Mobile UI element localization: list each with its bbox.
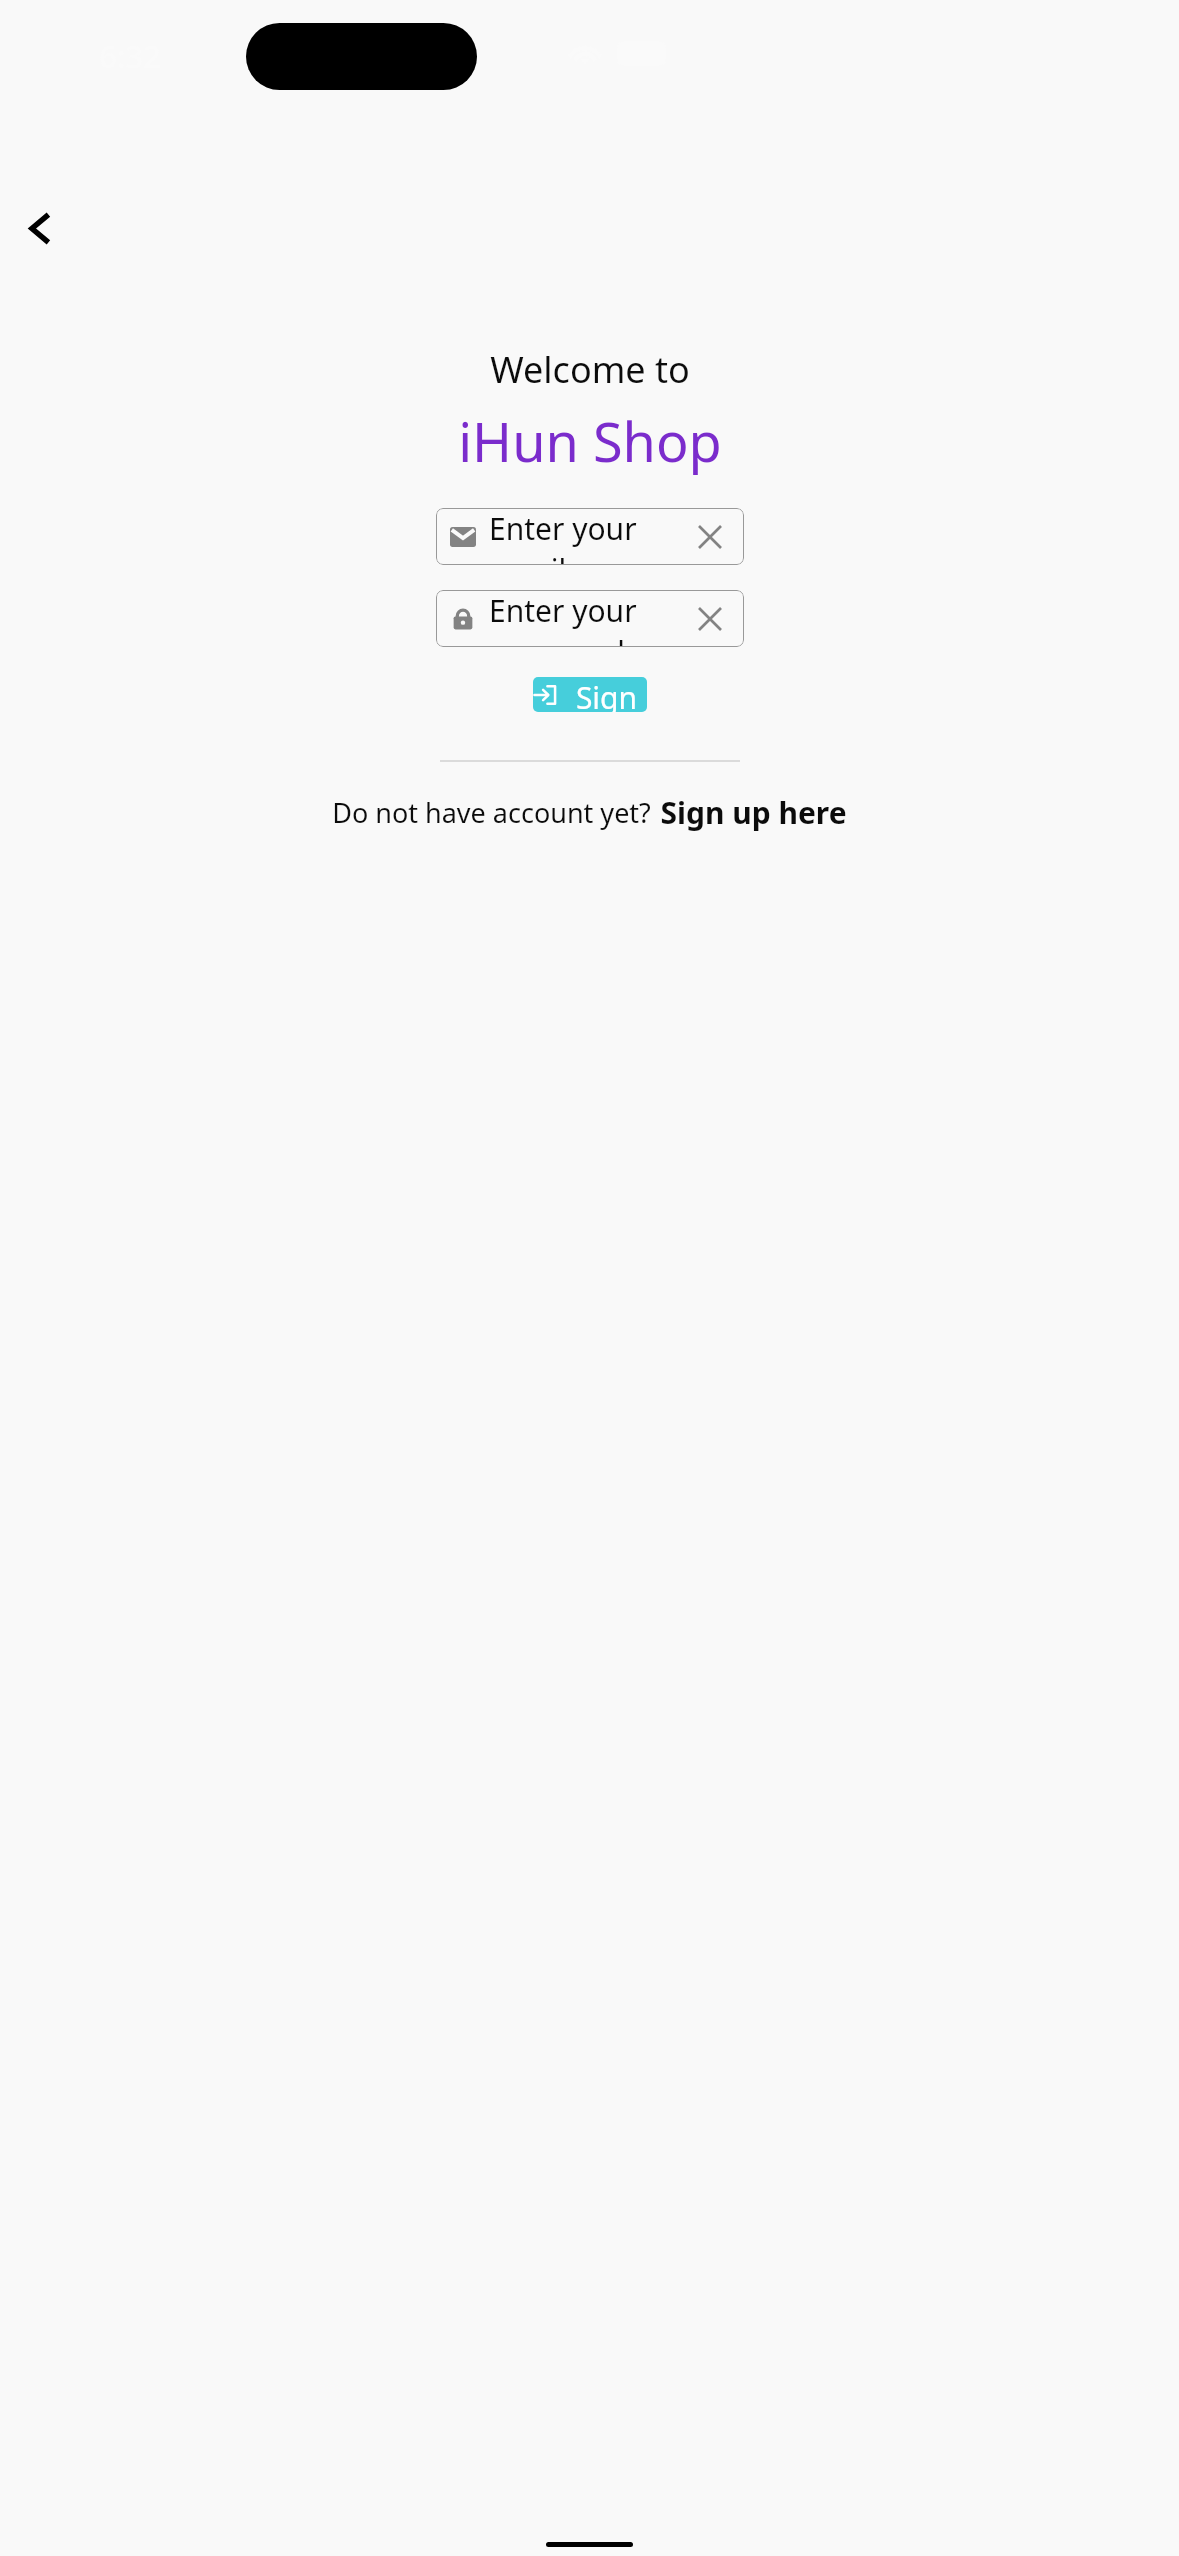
button[interactable]: Clear (690, 517, 730, 557)
button[interactable]: Back (8, 196, 72, 260)
staticText: Enter your email (489, 508, 690, 565)
staticText: Sign up here (660, 792, 847, 833)
staticText: iHun Shop (458, 404, 722, 478)
button[interactable]: Enter your password (436, 590, 744, 647)
button[interactable]: Sign In (533, 677, 647, 712)
button[interactable]: Enter your email (436, 508, 744, 565)
staticText: Enter your password (489, 590, 690, 647)
staticText: Do not have account yet? (332, 794, 651, 831)
button[interactable]: Clear (690, 599, 730, 639)
staticText: Sign In (566, 677, 647, 712)
button[interactable]: Sign up here (660, 792, 847, 833)
staticText: Welcome to (490, 345, 690, 394)
